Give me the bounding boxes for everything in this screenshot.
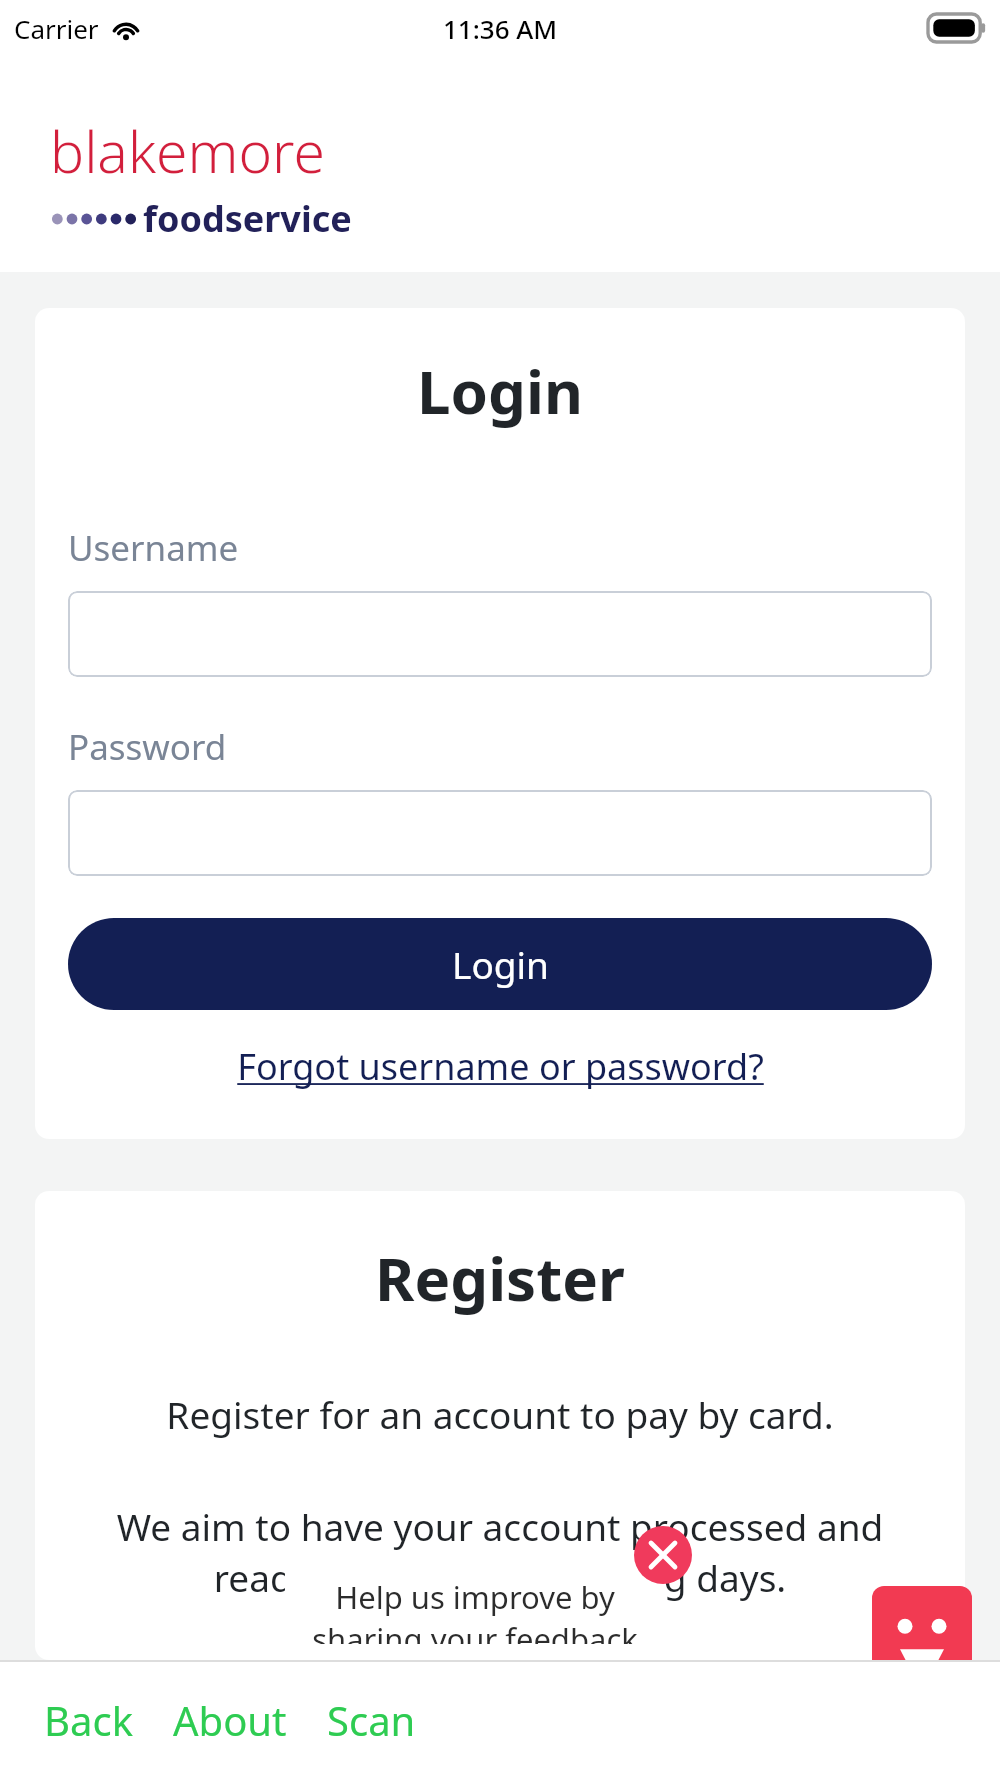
button[interactable]: Scan: [327, 1693, 416, 1747]
staticText: Scan: [327, 1693, 416, 1747]
staticText: Back: [44, 1693, 133, 1747]
staticText: Login: [452, 939, 549, 989]
staticText: Username: [68, 524, 239, 572]
staticText: We aim to have your account processed an…: [65, 1501, 935, 1603]
staticText: Help us improve by sharing your feedback: [299, 1576, 651, 1644]
button[interactable]: Close: [634, 1526, 692, 1584]
staticText: About: [173, 1693, 287, 1747]
button[interactable]: [68, 591, 932, 677]
button[interactable]: About: [173, 1693, 287, 1747]
staticText: foodservice: [143, 194, 352, 243]
staticText: Password: [68, 723, 227, 771]
button[interactable]: Login: [68, 918, 932, 1010]
button[interactable]: Help us improve by sharing your feedback: [285, 1560, 665, 1660]
staticText: Register for an account to pay by card.: [65, 1389, 935, 1439]
button[interactable]: Open feedback chat: [872, 1586, 972, 1682]
staticText: blakemore: [50, 112, 325, 190]
button[interactable]: Forgot username or password?: [68, 1042, 932, 1091]
button[interactable]: [68, 790, 932, 876]
staticText: Carrier: [14, 11, 99, 46]
staticText: 11:36 AM: [443, 11, 558, 46]
staticText: Login: [68, 350, 932, 432]
button[interactable]: Back: [44, 1693, 133, 1747]
staticText: Register: [65, 1237, 935, 1319]
staticText: Forgot username or password?: [237, 1042, 764, 1091]
